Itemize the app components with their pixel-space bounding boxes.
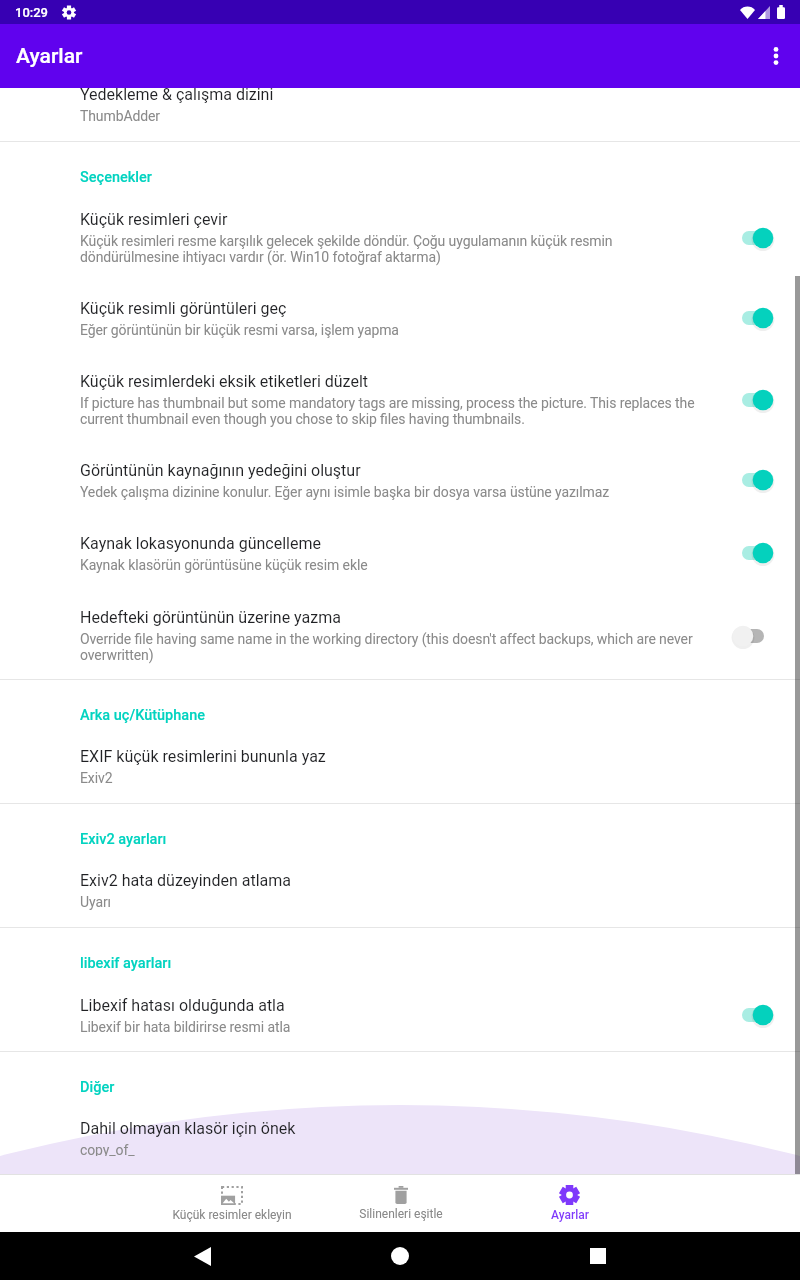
staticText: Küçük resimli görüntüleri geç bbox=[80, 299, 287, 318]
button[interactable]: Küçük resimli görüntüleri geç bbox=[0, 282, 800, 356]
staticText: Libexif bir hata bildirirse resmi atla bbox=[80, 1019, 291, 1035]
button[interactable]: Libexif hatası olduğunda atla bbox=[0, 979, 800, 1051]
button[interactable]: Hedefteki görüntünün üzerine yazma bbox=[0, 592, 800, 679]
staticText: Küçük resimlerdeki eksik etiketleri düze… bbox=[80, 372, 369, 391]
staticText: Arka uç/Kütüphane bbox=[80, 707, 206, 724]
staticText: Exiv2 bbox=[80, 770, 113, 786]
button[interactable]: Back bbox=[182, 1236, 222, 1276]
staticText: Yedekleme & çalışma dizini bbox=[80, 85, 274, 104]
button[interactable]: Yedekleme & çalışma dizini bbox=[0, 85, 800, 124]
button[interactable]: EXIF küçük resimlerini bununla yaz bbox=[0, 731, 800, 803]
staticText: Küçük resimleri çevir bbox=[80, 210, 228, 229]
staticText: Exiv2 hata düzeyinden atlama bbox=[80, 871, 291, 890]
staticText: copy_of_ bbox=[80, 1142, 135, 1156]
staticText: If picture has thumbnail but some mandat… bbox=[80, 395, 702, 427]
button[interactable]: Küçük resimler ekleyin bbox=[147, 1175, 316, 1232]
button[interactable]: Recents bbox=[578, 1236, 618, 1276]
button[interactable]: Ayarlar bbox=[485, 1175, 654, 1232]
staticText: Ayarlar bbox=[551, 1208, 589, 1222]
staticText: Görüntünün kaynağının yedeğini oluştur bbox=[80, 461, 361, 480]
staticText: Yedek çalışma dizinine konulur. Eğer ayn… bbox=[80, 484, 610, 500]
staticText: Diğer bbox=[80, 1079, 115, 1096]
button[interactable]: Dahil olmayan klasör için önek bbox=[0, 1103, 800, 1174]
staticText: Override file having same name in the wo… bbox=[80, 631, 702, 663]
staticText: Küçük resimleri resme karşılık gelecek ş… bbox=[80, 233, 702, 265]
staticText: Silinenleri eşitle bbox=[359, 1207, 443, 1221]
button[interactable]: Küçük resimlerdeki eksik etiketleri düze… bbox=[0, 356, 800, 444]
staticText: Uyarı bbox=[80, 894, 111, 910]
button[interactable]: More options bbox=[752, 32, 800, 80]
button[interactable]: Exiv2 hata düzeyinden atlama bbox=[0, 855, 800, 927]
staticText: Kaynak lokasyonunda güncelleme bbox=[80, 534, 321, 553]
staticText: Hedefteki görüntünün üzerine yazma bbox=[80, 608, 341, 627]
button[interactable]: Kaynak lokasyonunda güncelleme bbox=[0, 517, 800, 592]
staticText: EXIF küçük resimlerini bununla yaz bbox=[80, 747, 326, 766]
button[interactable]: Küçük resimleri çevir bbox=[0, 194, 800, 282]
staticText: libexif ayarları bbox=[80, 955, 172, 972]
button[interactable]: Home bbox=[380, 1236, 420, 1276]
staticText: ThumbAdder bbox=[80, 108, 161, 124]
button[interactable]: Görüntünün kaynağının yedeğini oluştur bbox=[0, 444, 800, 517]
staticText: Exiv2 ayarları bbox=[80, 831, 167, 848]
staticText: Libexif hatası olduğunda atla bbox=[80, 996, 285, 1015]
staticText: 10:29 bbox=[15, 5, 49, 20]
staticText: Dahil olmayan klasör için önek bbox=[80, 1119, 296, 1138]
staticText: Seçenekler bbox=[80, 169, 152, 186]
staticText: Kaynak klasörün görüntüsüne küçük resim … bbox=[80, 557, 368, 573]
staticText: Eğer görüntünün bir küçük resmi varsa, i… bbox=[80, 322, 399, 338]
staticText: Ayarlar bbox=[16, 44, 83, 69]
button[interactable]: Silinenleri eşitle bbox=[316, 1175, 485, 1232]
staticText: Küçük resimler ekleyin bbox=[172, 1208, 292, 1222]
